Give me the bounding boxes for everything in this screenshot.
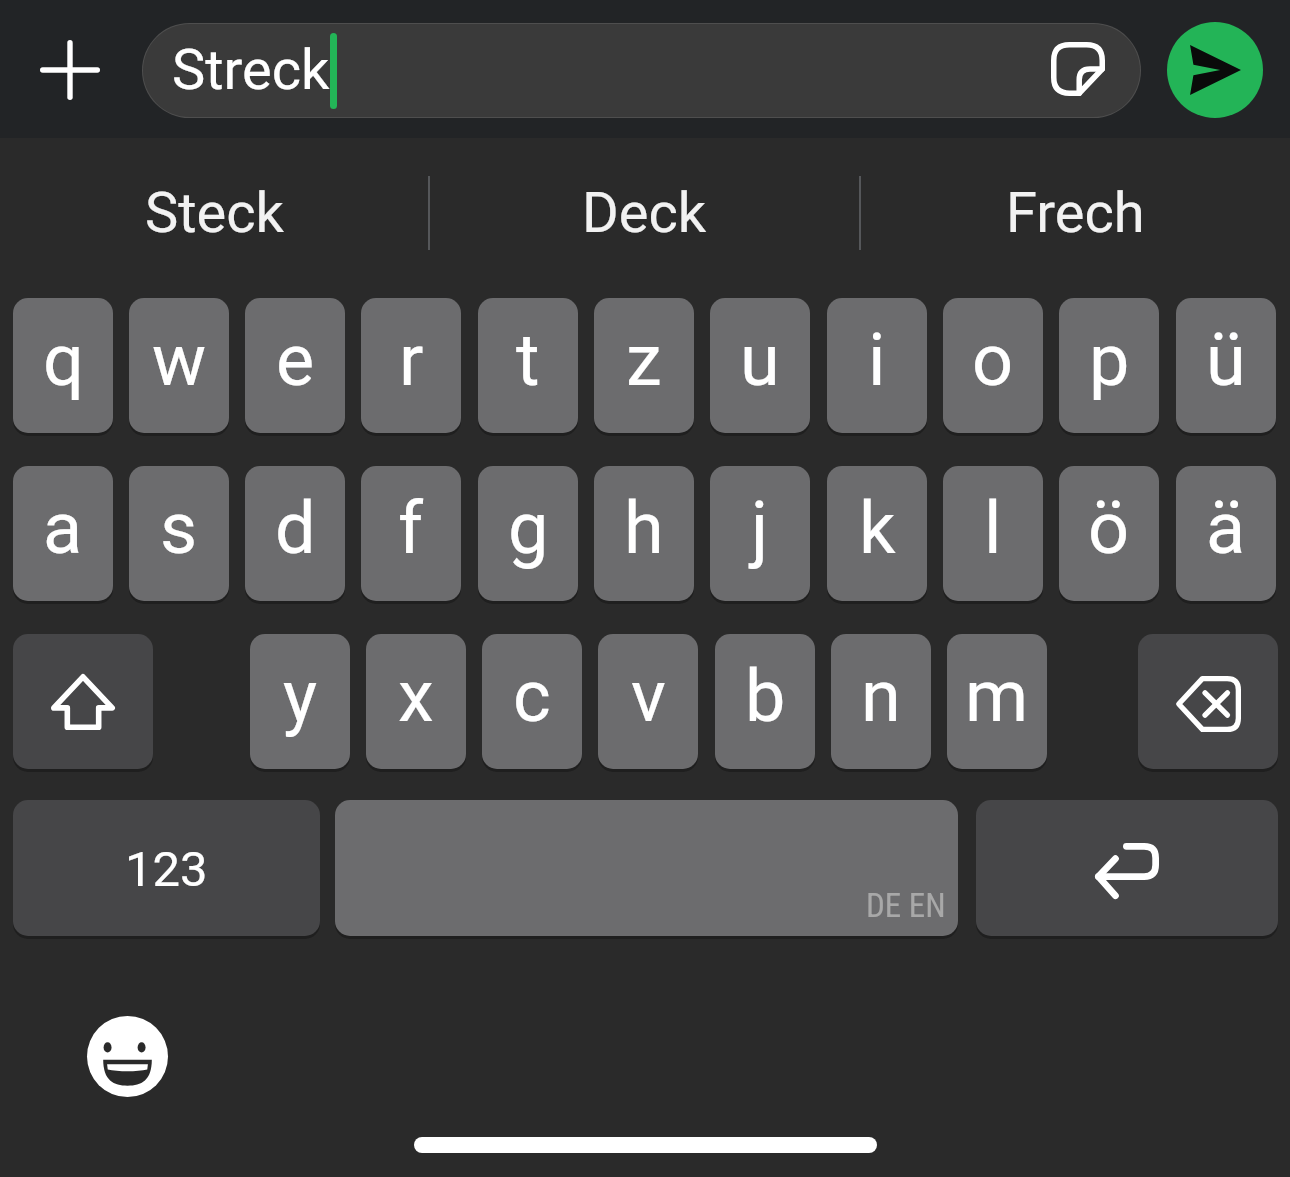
staticText: t bbox=[516, 318, 540, 402]
button[interactable]: Frech bbox=[861, 138, 1290, 288]
button[interactable]: h bbox=[594, 466, 694, 601]
button[interactable]: t bbox=[478, 298, 578, 433]
staticText: ü bbox=[1206, 318, 1246, 402]
button[interactable]: Stickers bbox=[1045, 37, 1111, 103]
staticText: Deck bbox=[582, 180, 707, 246]
staticText: d bbox=[275, 486, 316, 570]
button[interactable]: Emoji bbox=[87, 1016, 168, 1097]
staticText: o bbox=[972, 318, 1014, 402]
button[interactable]: o bbox=[943, 298, 1043, 433]
staticText: u bbox=[740, 318, 780, 402]
button[interactable]: r bbox=[361, 298, 461, 433]
button[interactable]: g bbox=[478, 466, 578, 601]
button[interactable]: s bbox=[129, 466, 229, 601]
button[interactable]: Add attachment bbox=[28, 28, 112, 112]
staticText: Frech bbox=[1006, 180, 1145, 246]
button[interactable]: Streck bbox=[143, 24, 1140, 117]
staticText: y bbox=[283, 654, 318, 738]
button[interactable]: 123 bbox=[13, 800, 320, 936]
button[interactable]: m bbox=[947, 634, 1047, 769]
button[interactable]: i bbox=[827, 298, 927, 433]
staticText: g bbox=[508, 486, 549, 570]
button[interactable]: b bbox=[715, 634, 815, 769]
button[interactable]: ö bbox=[1059, 466, 1159, 601]
staticText: ä bbox=[1206, 486, 1246, 570]
button[interactable]: a bbox=[13, 466, 113, 601]
staticText: Streck bbox=[172, 37, 330, 103]
staticText: s bbox=[160, 486, 198, 570]
button[interactable]: ü bbox=[1176, 298, 1276, 433]
staticText: DE EN bbox=[866, 886, 946, 925]
button[interactable]: Deck bbox=[430, 138, 859, 288]
staticText: f bbox=[398, 486, 424, 570]
staticText: 123 bbox=[125, 841, 208, 898]
button[interactable]: y bbox=[250, 634, 350, 769]
staticText: m bbox=[965, 654, 1029, 738]
staticText: v bbox=[631, 654, 666, 738]
button[interactable]: Shift bbox=[13, 634, 153, 769]
staticText: p bbox=[1089, 318, 1130, 402]
staticText: n bbox=[861, 654, 901, 738]
staticText: z bbox=[626, 318, 662, 402]
button[interactable]: l bbox=[943, 466, 1043, 601]
staticText: l bbox=[984, 486, 1002, 570]
button[interactable]: Steck bbox=[0, 138, 428, 288]
button[interactable]: q bbox=[13, 298, 113, 433]
button[interactable]: d bbox=[245, 466, 345, 601]
staticText: h bbox=[624, 486, 664, 570]
staticText: q bbox=[43, 318, 84, 402]
button[interactable]: z bbox=[594, 298, 694, 433]
staticText: c bbox=[513, 654, 551, 738]
button[interactable]: Backspace bbox=[1138, 634, 1278, 769]
staticText: e bbox=[276, 318, 315, 402]
button[interactable]: f bbox=[361, 466, 461, 601]
staticText: i bbox=[868, 318, 886, 402]
staticText: x bbox=[398, 654, 434, 738]
button[interactable]: w bbox=[129, 298, 229, 433]
staticText: j bbox=[751, 486, 769, 570]
button[interactable]: v bbox=[598, 634, 698, 769]
button[interactable]: p bbox=[1059, 298, 1159, 433]
button[interactable]: j bbox=[710, 466, 810, 601]
staticText: r bbox=[399, 318, 424, 402]
staticText: b bbox=[745, 654, 786, 738]
button[interactable]: Enter bbox=[976, 800, 1278, 936]
button[interactable]: c bbox=[482, 634, 582, 769]
staticText: Steck bbox=[145, 180, 284, 246]
button[interactable]: u bbox=[710, 298, 810, 433]
staticText: w bbox=[152, 318, 207, 402]
button[interactable]: e bbox=[245, 298, 345, 433]
button[interactable]: Space bbox=[335, 800, 958, 936]
button[interactable]: x bbox=[366, 634, 466, 769]
button[interactable]: n bbox=[831, 634, 931, 769]
button[interactable]: Send bbox=[1167, 22, 1263, 118]
button[interactable]: k bbox=[827, 466, 927, 601]
staticText: k bbox=[859, 486, 896, 570]
button[interactable]: ä bbox=[1176, 466, 1276, 601]
staticText: a bbox=[43, 486, 83, 570]
staticText: ö bbox=[1088, 486, 1130, 570]
